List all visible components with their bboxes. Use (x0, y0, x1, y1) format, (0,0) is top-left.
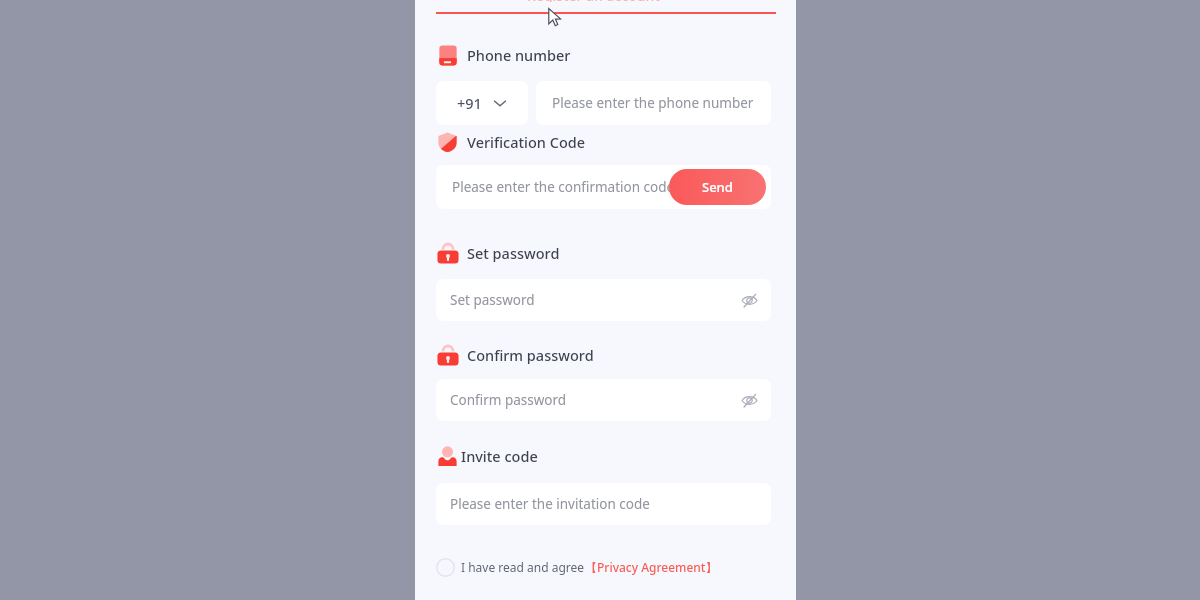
staticText: Please enter the phone number (552, 94, 754, 112)
staticText: Register an account (527, 0, 660, 2)
button[interactable]: Toggle password visibility (738, 289, 760, 311)
button[interactable]: Select country code (436, 81, 528, 125)
button[interactable]: Send (669, 169, 766, 205)
staticText: Set password (467, 243, 560, 263)
button[interactable]: Set password (436, 242, 560, 264)
staticText: Please enter the confirmation code (452, 178, 675, 196)
button[interactable]: Toggle password visibility (738, 389, 760, 411)
staticText: I have read and agree (461, 559, 585, 575)
staticText: Send (702, 178, 733, 196)
button[interactable]: Confirm password (436, 344, 594, 366)
staticText: Confirm password (467, 345, 594, 365)
staticText: Invite code (461, 446, 538, 466)
button[interactable]: Confirm password (436, 379, 771, 421)
button[interactable]: Phone number (436, 44, 571, 66)
button[interactable]: Set password (436, 279, 771, 321)
staticText: +91 (457, 93, 482, 113)
button[interactable]: Register an account (527, 0, 660, 2)
staticText: Confirm password (450, 391, 567, 409)
button[interactable]: I have read and agree (436, 556, 718, 578)
staticText: Set password (450, 291, 535, 309)
button[interactable]: Please enter the confirmation code (436, 165, 771, 209)
staticText: Verification Code (467, 132, 586, 152)
staticText: Please enter the invitation code (450, 495, 650, 513)
button[interactable]: Invite code (436, 445, 538, 467)
button[interactable]: Please enter the invitation code (436, 483, 771, 525)
button[interactable]: Please enter the phone number (536, 81, 771, 125)
staticText: Phone number (467, 45, 571, 65)
staticText: 【Privacy Agreement】 (585, 559, 718, 575)
button[interactable]: Verification Code (436, 131, 586, 153)
